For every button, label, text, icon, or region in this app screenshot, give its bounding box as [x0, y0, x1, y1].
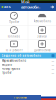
staticText: Сведения об автомобиле	[1, 54, 41, 57]
staticText: Топливо	[7, 35, 20, 38]
button[interactable]: Next	[48, 3, 56, 11]
button[interactable]: Марка автомобиля	[0, 59, 56, 63]
button[interactable]: Модель	[0, 63, 56, 67]
staticText: Мой автомобиль	[21, 0, 40, 15]
button[interactable]: Пробег	[0, 71, 56, 75]
staticText: —	[51, 71, 54, 74]
button[interactable]: То и ремонт	[0, 38, 28, 54]
button[interactable]: Топливо	[0, 25, 28, 40]
staticText: Номер кузова	[1, 67, 19, 70]
staticText: Диагностика	[34, 48, 50, 52]
button[interactable]: Menu	[0, 3, 13, 11]
staticText: Марка автомобиля	[1, 59, 26, 62]
button[interactable]: Пробег	[0, 10, 28, 26]
staticText: Автомобиль	[34, 19, 51, 23]
button[interactable]: Диагностика	[28, 38, 56, 54]
button[interactable]: Номер кузова	[0, 67, 56, 71]
staticText: —	[51, 59, 54, 62]
staticText: —	[51, 67, 54, 70]
staticText: То и ремонт	[5, 48, 22, 52]
staticText: Модель	[1, 63, 11, 66]
staticText: Пробег	[1, 71, 11, 74]
staticText: Записи	[37, 35, 47, 38]
staticText: Пробег	[9, 20, 19, 24]
button[interactable]: Записи	[28, 25, 56, 40]
staticText: РЕКЛАМА	[14, 96, 27, 99]
button[interactable]: Автомобиль	[28, 11, 56, 25]
staticText: —	[51, 63, 54, 66]
staticText: АВТО	[4, 5, 11, 9]
